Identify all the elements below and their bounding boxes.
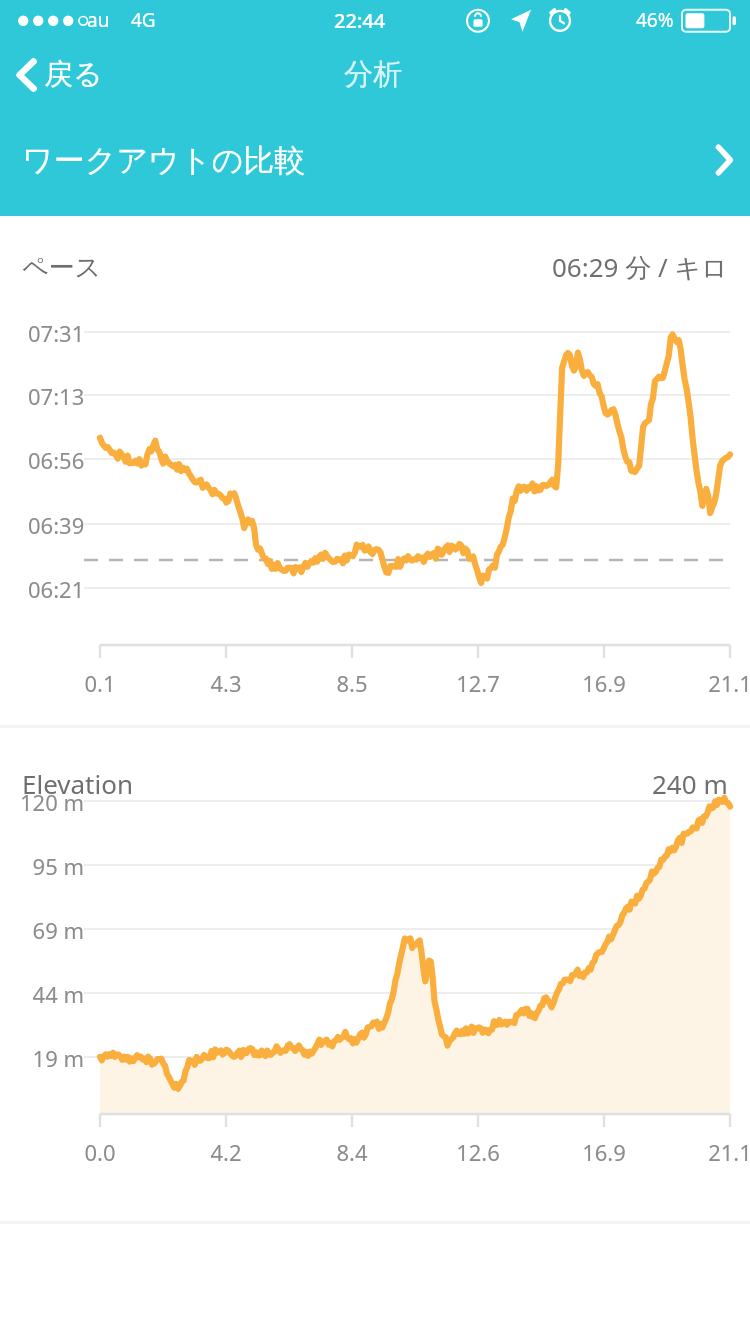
staticText: 22:44 — [334, 7, 386, 34]
staticText: au — [87, 7, 110, 33]
staticText: ペース — [22, 251, 102, 284]
button[interactable]: ワークアウトの比較 — [0, 108, 750, 216]
staticText: 06:29 分 / キロ — [552, 249, 728, 285]
staticText: 0.0 — [60, 1137, 140, 1167]
staticText: 44 m — [0, 979, 84, 1009]
staticText: 戻る — [44, 56, 103, 93]
staticText: 0.1 — [60, 668, 140, 698]
staticText: 06:39 — [28, 510, 85, 540]
staticText: Elevation — [22, 766, 133, 801]
staticText: 12.6 — [438, 1137, 518, 1167]
staticText: 分析 — [344, 56, 402, 93]
staticText: 19 m — [0, 1043, 84, 1073]
staticText: 95 m — [0, 851, 84, 881]
staticText: 4G — [131, 7, 156, 33]
staticText: 8.5 — [312, 668, 392, 698]
staticText: 8.4 — [312, 1137, 392, 1167]
staticText: 240 m — [652, 766, 728, 801]
staticText: 07:13 — [28, 381, 85, 411]
staticText: 120 m — [0, 787, 84, 817]
other: Compare workouts — [714, 144, 734, 176]
staticText: 06:21 — [28, 574, 85, 604]
staticText: 07:31 — [28, 318, 85, 348]
button[interactable]: 戻る — [0, 48, 121, 101]
staticText: 12.7 — [438, 668, 518, 698]
staticText: 69 m — [0, 915, 84, 945]
staticText: 06:56 — [28, 445, 85, 475]
staticText: 21.1 — [690, 668, 750, 698]
staticText: 46% — [636, 7, 674, 33]
staticText: 16.9 — [564, 668, 644, 698]
staticText: 4.3 — [186, 668, 266, 698]
staticText: 21.1 — [690, 1137, 750, 1167]
staticText: ワークアウトの比較 — [22, 141, 306, 180]
staticText: 4.2 — [186, 1137, 266, 1167]
staticText: 16.9 — [564, 1137, 644, 1167]
